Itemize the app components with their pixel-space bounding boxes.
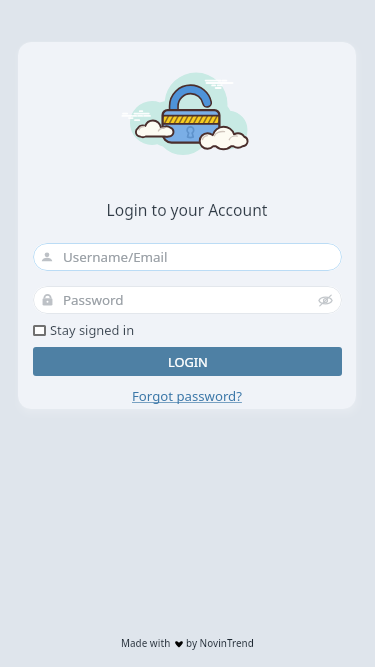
staticText: Stay signed in — [50, 321, 135, 339]
button[interactable]: Username/Email — [33, 243, 342, 271]
staticText: Login to your Account — [18, 199, 356, 220]
button[interactable]: LOGIN — [33, 347, 342, 376]
staticText: LOGIN — [168, 353, 208, 370]
staticText: Made with — [121, 637, 171, 650]
button[interactable]: Show password — [318, 293, 333, 308]
button[interactable]: Password — [33, 286, 342, 314]
button[interactable]: Forgot password? — [132, 387, 242, 405]
staticText: Password — [63, 291, 124, 309]
staticText: by NovinTrend — [186, 637, 254, 650]
staticText: Username/Email — [63, 248, 168, 266]
button[interactable]: Stay signed in — [33, 321, 135, 339]
